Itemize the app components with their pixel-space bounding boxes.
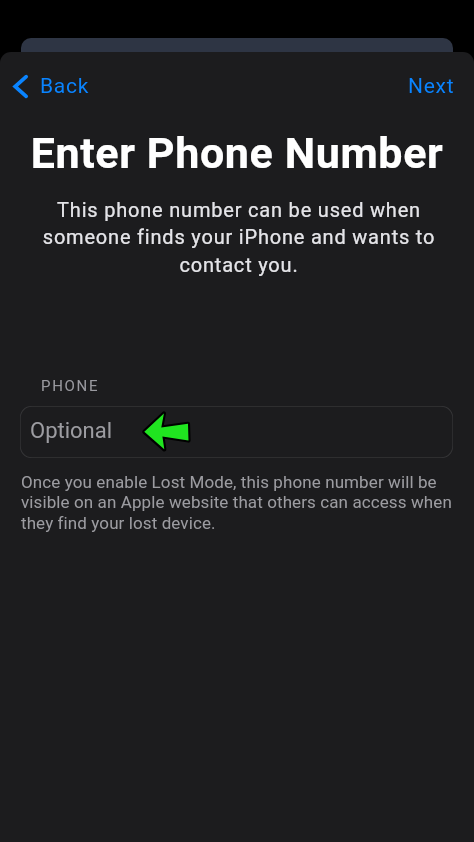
staticText: Enter Phone Number xyxy=(0,128,474,178)
staticText: Once you enable Lost Mode, this phone nu… xyxy=(21,472,462,534)
other: Pointer arrow xyxy=(143,412,190,451)
staticText: Optional xyxy=(30,418,113,444)
staticText: PHONE xyxy=(41,377,100,395)
button[interactable]: Back xyxy=(0,68,104,105)
staticText: Next xyxy=(408,74,455,99)
button[interactable]: Optional xyxy=(20,406,453,458)
button[interactable]: Next xyxy=(394,68,474,105)
staticText: Back xyxy=(40,74,90,99)
staticText: This phone number can be used when someo… xyxy=(38,198,440,277)
